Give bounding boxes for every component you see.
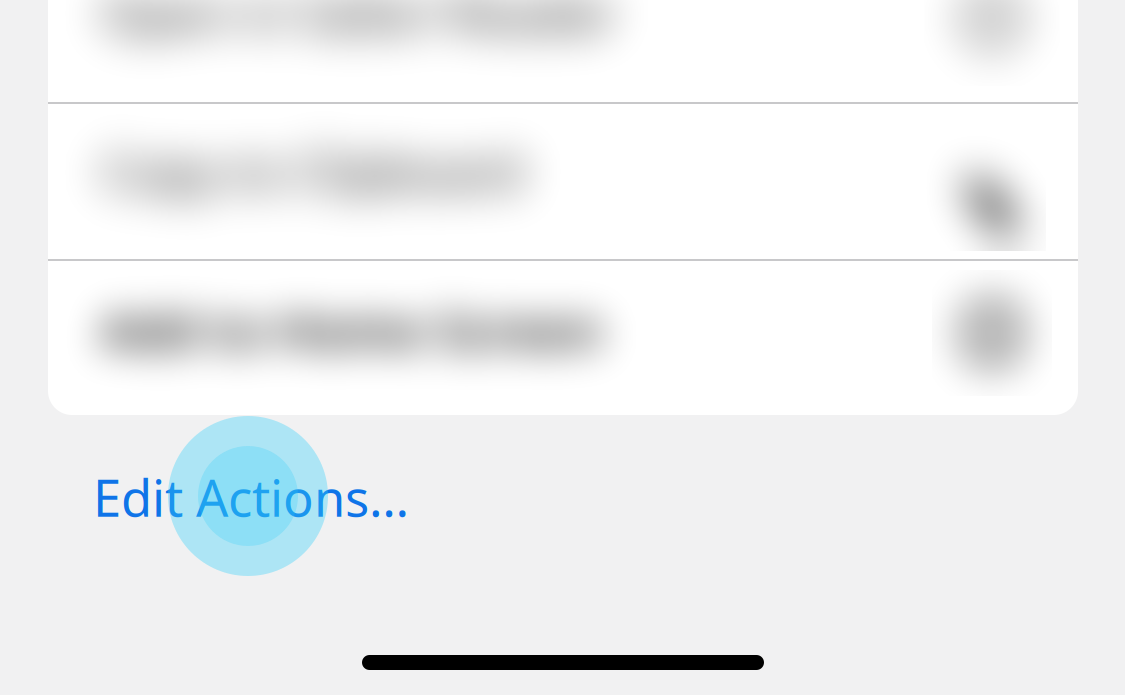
staticText: Edit Actions… bbox=[93, 463, 409, 531]
button[interactable]: Edit Actions… bbox=[93, 455, 423, 539]
